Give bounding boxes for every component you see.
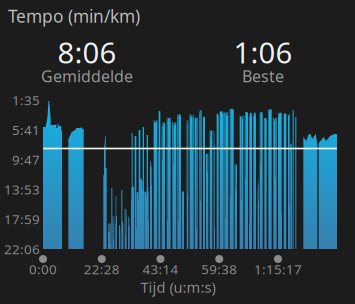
staticText: Tempo (min/km) xyxy=(8,4,140,27)
staticText: 8:06 xyxy=(57,32,116,71)
staticText: 59:38 xyxy=(201,260,237,278)
staticText: Tijd (u:m:s) xyxy=(140,277,215,297)
staticText: 1:35 xyxy=(12,91,40,109)
staticText: Beste xyxy=(242,65,284,87)
staticText: 43:14 xyxy=(142,260,178,278)
staticText: 9:47 xyxy=(12,151,40,168)
staticText: Gemiddelde xyxy=(41,65,133,87)
staticText: 13:53 xyxy=(4,180,40,198)
staticText: 0:00 xyxy=(29,260,57,278)
staticText: 22:28 xyxy=(84,260,120,278)
staticText: 1:06 xyxy=(233,32,292,71)
staticText: 22:06 xyxy=(4,240,40,258)
staticText: 1:15:17 xyxy=(254,260,302,278)
staticText: 17:59 xyxy=(4,210,40,228)
staticText: 5:41 xyxy=(12,121,40,139)
